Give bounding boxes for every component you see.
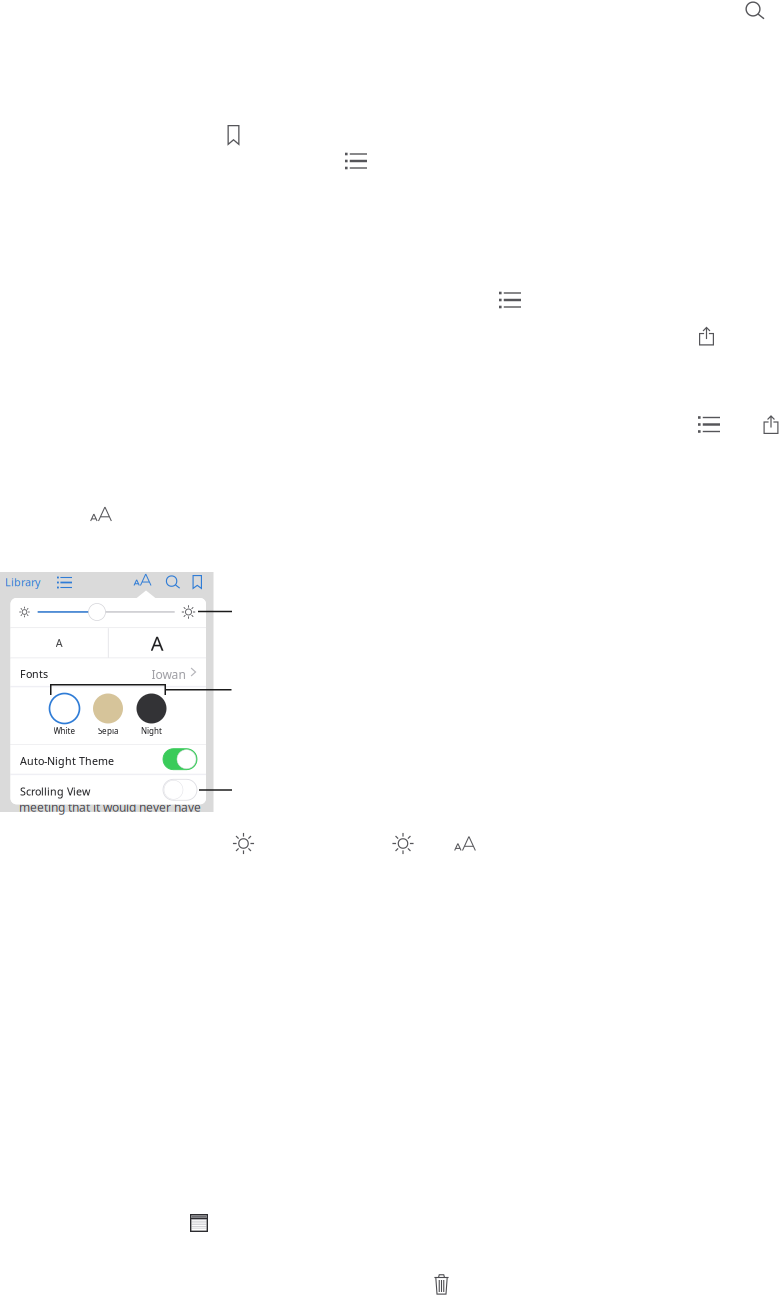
button[interactable]: Brightness <box>232 832 254 854</box>
button[interactable]: Share <box>763 415 778 434</box>
staticText: meeting that it would never have <box>19 799 201 815</box>
button[interactable]: Search <box>165 575 180 590</box>
button[interactable]: A <box>109 628 206 658</box>
button[interactable]: Bookmark <box>192 575 202 589</box>
button[interactable]: Bookmark <box>227 125 239 145</box>
button[interactable]: Scrolling View <box>10 775 206 804</box>
button[interactable]: White <box>48 693 80 736</box>
button[interactable]: Appearance <box>134 574 151 585</box>
staticText: Iowan <box>151 666 185 682</box>
button[interactable]: Text size <box>455 836 475 850</box>
button[interactable]: Contents <box>57 577 72 587</box>
staticText: Sepia <box>98 725 118 736</box>
button[interactable]: Contents <box>499 293 521 307</box>
button[interactable]: Share <box>699 326 714 345</box>
button[interactable]: Search <box>745 1 765 21</box>
button[interactable]: Auto-Night Theme <box>10 745 206 774</box>
button[interactable]: Delete <box>434 1273 449 1294</box>
staticText: Auto-Night Theme <box>20 754 114 768</box>
button[interactable]: Notes <box>190 1214 208 1232</box>
button[interactable]: Library <box>5 575 45 589</box>
staticText: Scrolling View <box>20 784 90 798</box>
button[interactable]: Night <box>135 693 167 736</box>
button[interactable]: A <box>10 628 108 658</box>
button[interactable]: Brightness <box>392 832 414 854</box>
button[interactable]: Contents <box>698 417 720 431</box>
staticText: Fonts <box>20 667 48 681</box>
staticText: A <box>56 636 63 650</box>
staticText: A <box>151 630 164 656</box>
staticText: Library <box>5 575 40 589</box>
staticText: Night <box>141 725 162 736</box>
button[interactable]: Fonts <box>10 658 206 686</box>
button[interactable]: Text size <box>91 507 111 521</box>
button[interactable]: Contents <box>345 154 367 168</box>
button[interactable]: Sepia <box>92 693 124 736</box>
staticText: White <box>53 725 75 736</box>
